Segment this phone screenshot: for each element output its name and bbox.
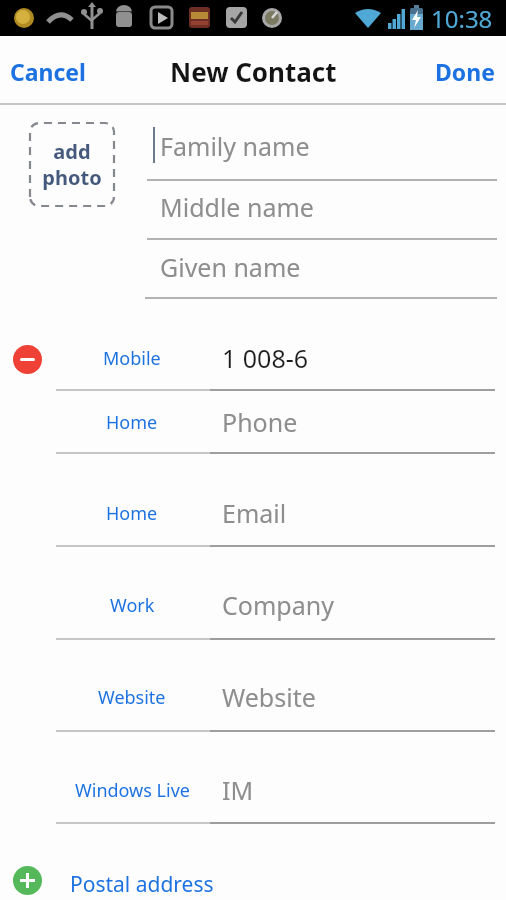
staticText: New Contact	[170, 54, 337, 89]
staticText: 10:38	[431, 2, 493, 35]
staticText: Website	[98, 685, 166, 710]
staticText: Postal address	[70, 870, 214, 899]
staticText: Email	[222, 496, 287, 530]
button[interactable]	[13, 345, 42, 374]
button[interactable]	[148, 181, 497, 237]
staticText: Done	[435, 56, 495, 87]
staticText: Phone	[222, 405, 298, 439]
staticText: Cancel	[10, 56, 86, 87]
staticText: Middle name	[160, 190, 314, 224]
button[interactable]	[56, 858, 496, 900]
button[interactable]	[148, 240, 497, 296]
staticText: IM	[222, 773, 254, 807]
staticText: Family name	[160, 129, 310, 163]
staticText: Home	[106, 501, 158, 526]
button[interactable]	[56, 327, 496, 389]
staticText: Work	[110, 593, 155, 618]
staticText: Mobile	[103, 346, 161, 371]
button[interactable]	[56, 391, 496, 453]
button[interactable]	[148, 123, 497, 179]
staticText: add photo	[42, 138, 102, 191]
button[interactable]	[56, 482, 496, 544]
button[interactable]	[56, 666, 496, 728]
staticText: Home	[106, 410, 158, 435]
staticText: Website	[222, 680, 316, 714]
button[interactable]	[56, 574, 496, 636]
button[interactable]: Cancel	[10, 49, 110, 93]
staticText: Windows Live	[75, 778, 190, 803]
button[interactable]: Done	[416, 49, 506, 93]
staticText: Given name	[160, 250, 301, 284]
button[interactable]	[13, 866, 42, 895]
button[interactable]: add photo	[29, 122, 115, 207]
staticText: 1 008-6	[222, 341, 309, 375]
button[interactable]	[56, 759, 496, 821]
staticText: Company	[222, 588, 334, 622]
